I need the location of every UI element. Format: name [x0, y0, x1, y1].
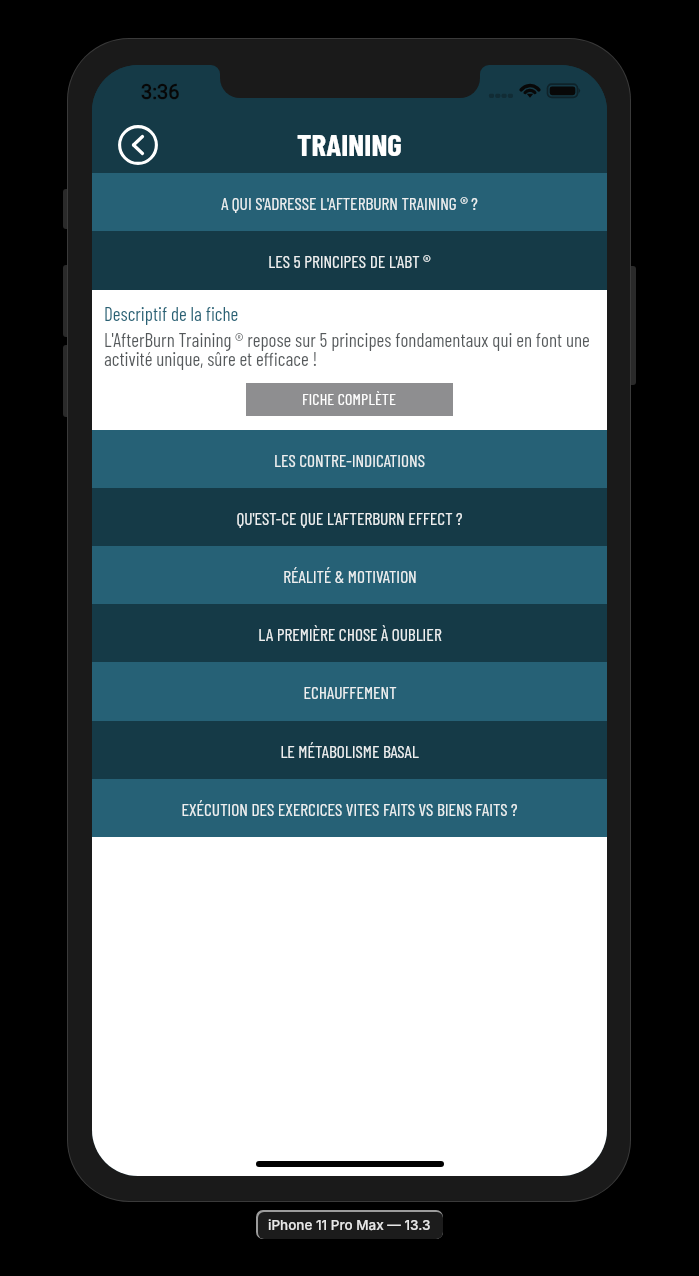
staticText: L'AfterBurn Training ® repose sur 5 prin… — [104, 328, 598, 370]
staticText: ECHAUFFEMENT — [303, 681, 397, 702]
staticText: LES CONTRE-INDICATIONS — [274, 449, 425, 470]
staticText: QU'EST-CE QUE L'AFTERBURN EFFECT ? — [236, 507, 463, 528]
button[interactable]: LES 5 PRINCIPES DE L'ABT ® — [92, 231, 607, 290]
staticText: FICHE COMPLÈTE — [302, 389, 397, 408]
staticText: LA PREMIÈRE CHOSE À OUBLIER — [258, 623, 442, 644]
button[interactable]: EXÉCUTION DES EXERCICES VITES FAITS VS B… — [92, 779, 607, 837]
staticText: A QUI S'ADRESSE L'AFTERBURN TRAINING ® ? — [221, 192, 478, 213]
staticText: TRAINING — [297, 125, 402, 162]
button[interactable]: LE MÉTABOLISME BASAL — [92, 721, 607, 779]
staticText: Descriptif de la fiche — [104, 302, 239, 325]
staticText: iPhone 11 Pro Max — 13.3 — [268, 1217, 431, 1233]
staticText: RÉALITÉ & MOTIVATION — [283, 565, 417, 586]
button[interactable]: FICHE COMPLÈTE — [246, 383, 453, 416]
staticText: LE MÉTABOLISME BASAL — [280, 740, 419, 761]
button[interactable]: A QUI S'ADRESSE L'AFTERBURN TRAINING ® ? — [92, 173, 607, 231]
button[interactable]: LES CONTRE-INDICATIONS — [92, 430, 607, 488]
button[interactable]: Back — [117, 124, 159, 166]
staticText: LES 5 PRINCIPES DE L'ABT ® — [268, 250, 431, 271]
button[interactable]: LA PREMIÈRE CHOSE À OUBLIER — [92, 604, 607, 662]
staticText: 3:36 — [141, 80, 180, 103]
button[interactable]: ECHAUFFEMENT — [92, 662, 607, 721]
button[interactable]: QU'EST-CE QUE L'AFTERBURN EFFECT ? — [92, 488, 607, 546]
staticText: EXÉCUTION DES EXERCICES VITES FAITS VS B… — [181, 798, 518, 819]
button[interactable]: RÉALITÉ & MOTIVATION — [92, 546, 607, 604]
